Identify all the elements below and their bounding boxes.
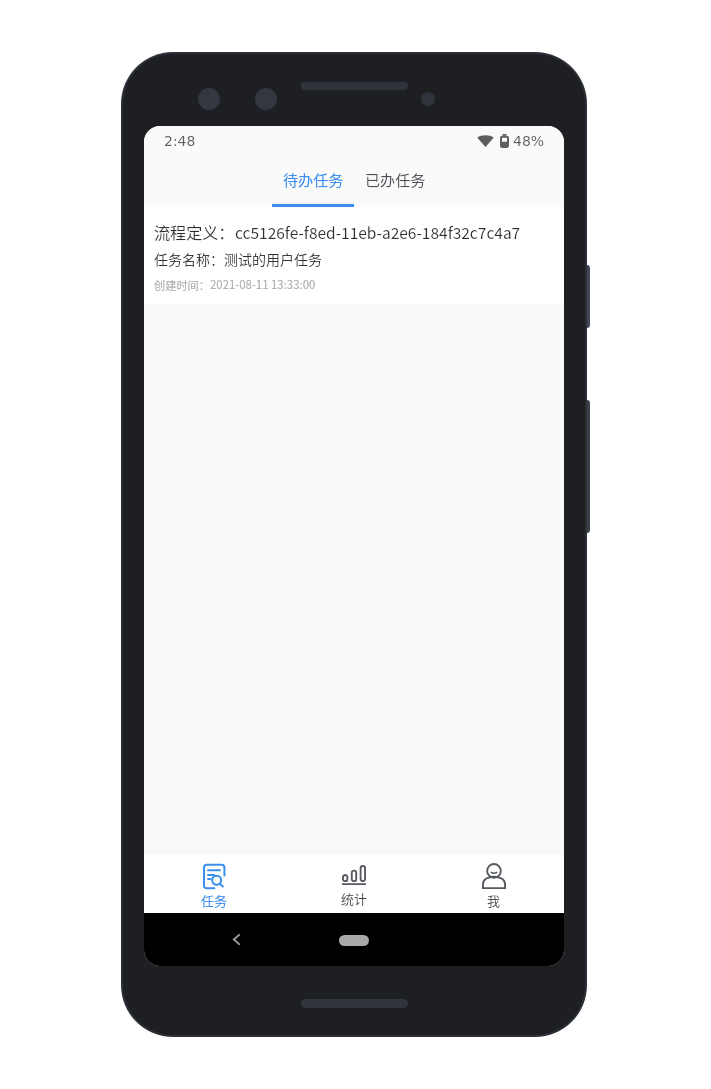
staticText: 流程定义： [154,220,235,243]
staticText: 48% [513,133,545,149]
staticText: 我 [487,891,501,910]
other: Profile [482,864,506,889]
other: Home [339,935,369,946]
button[interactable]: Tasks [144,855,284,913]
staticText: cc5126fe-f8ed-11eb-a2e6-184f32c7c4a7 [235,221,521,243]
staticText: 创建时间： [154,277,210,293]
button[interactable]: 已办任务 [365,168,426,190]
other: Statistics [342,864,366,887]
button[interactable]: Profile [424,855,564,913]
staticText: 统计 [341,889,368,908]
other: Tasks [203,864,225,889]
button[interactable]: 待办任务 [272,168,354,207]
staticText: 2021-08-11 13:33:00 [210,276,316,293]
button[interactable]: 流程定义： [144,207,564,304]
staticText: 2:48 [164,133,196,149]
other: Back [233,934,240,945]
staticText: 已办任务 [365,168,426,190]
staticText: 任务名称：测试的用户任务 [154,249,322,269]
staticText: 任务 [201,891,228,910]
staticText: 待办任务 [283,168,344,190]
button[interactable]: Statistics [284,855,424,913]
